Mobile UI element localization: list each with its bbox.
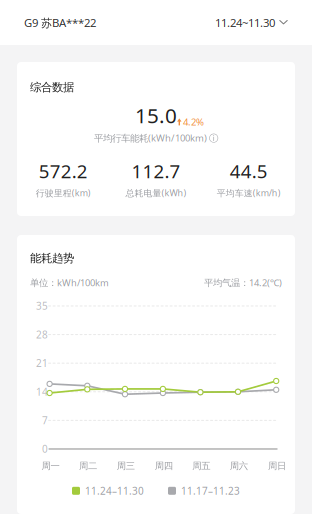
staticText: 周日	[268, 460, 286, 472]
staticText: 平均行车能耗(kWh/100km) ⓘ	[94, 131, 218, 144]
staticText: 平均车速(km/h)	[217, 187, 281, 199]
staticText: 7	[42, 414, 48, 427]
staticText: 11.24–11.30	[85, 484, 144, 498]
staticText: 44.5	[230, 158, 268, 184]
staticText: 0	[42, 442, 48, 456]
staticText: 112.7	[131, 158, 180, 184]
staticText: G9 苏BA***22	[24, 15, 96, 30]
staticText: 572.2	[39, 158, 88, 184]
staticText: 14	[36, 385, 48, 399]
staticText: 周五	[192, 460, 210, 472]
staticText: 35	[36, 299, 48, 313]
staticText: 15.0	[135, 101, 177, 129]
staticText: 综合数据	[30, 80, 74, 94]
staticText: 21	[36, 356, 48, 370]
staticText: 周四	[155, 460, 173, 472]
staticText: 单位：kWh/100km	[30, 276, 109, 289]
staticText: 平均气温：14.2(℃)	[204, 276, 282, 289]
staticText: 28	[36, 328, 48, 341]
staticText: 行驶里程(km)	[36, 187, 91, 199]
staticText: 11.17–11.23	[181, 484, 240, 498]
staticText: 周二	[79, 460, 97, 472]
staticText: 周三	[117, 460, 135, 472]
button[interactable]: G9 苏BA***22	[24, 15, 96, 30]
staticText: 11.24~11.30	[215, 15, 275, 30]
staticText: 能耗趋势	[30, 251, 74, 265]
staticText: 周一	[41, 460, 59, 472]
staticText: 4.2%	[183, 115, 204, 128]
staticText: 周六	[230, 460, 248, 472]
staticText: 总耗电量(kWh)	[125, 187, 186, 199]
button[interactable]: 11.24~11.30	[215, 15, 288, 30]
